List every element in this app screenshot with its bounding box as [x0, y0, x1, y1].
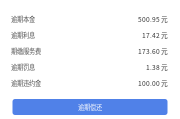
staticText: 期缴服务费	[11, 46, 41, 56]
button[interactable]: 逾期偿还	[12, 99, 167, 115]
staticText: 逾期利息	[11, 30, 35, 40]
staticText: 17.42 元	[142, 30, 168, 40]
staticText: 173.60 元	[138, 46, 168, 56]
staticText: 逾期违约金	[11, 78, 41, 88]
staticText: 逾期偿还	[78, 102, 102, 112]
staticText: 100.00 元	[138, 78, 168, 88]
staticText: 逾期本金	[11, 14, 35, 24]
staticText: 500.95 元	[138, 14, 168, 24]
staticText: 逾期罚息	[11, 62, 35, 72]
staticText: 1.38 元	[146, 62, 168, 72]
